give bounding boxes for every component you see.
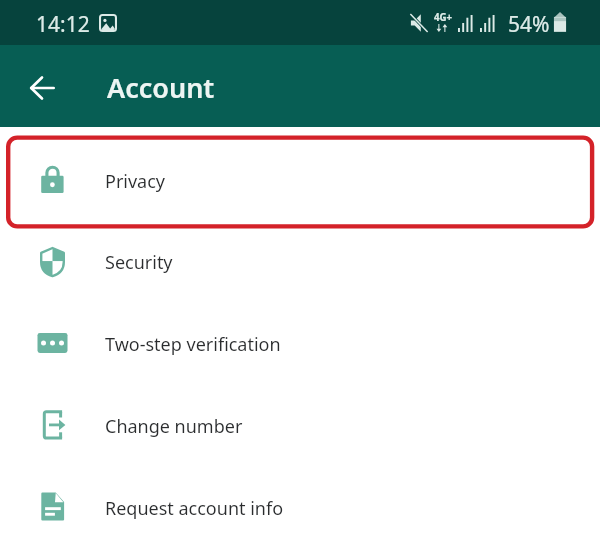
staticText: Change number [105,414,243,439]
staticText: 4G+ [434,11,453,24]
button[interactable]: Request account info [0,467,600,549]
button[interactable]: Navigate up [18,62,66,110]
button[interactable]: Two-step verification [0,303,600,385]
button[interactable]: Security [0,221,600,303]
staticText: Security [105,250,173,275]
staticText: 14:12 [36,10,90,39]
button[interactable]: Change number [0,385,600,467]
staticText: Privacy [105,169,166,194]
button[interactable]: Privacy [0,140,600,222]
staticText: 54% [508,10,550,39]
staticText: Account [107,69,215,106]
staticText: Two-step verification [105,332,281,357]
staticText: Request account info [105,496,284,521]
